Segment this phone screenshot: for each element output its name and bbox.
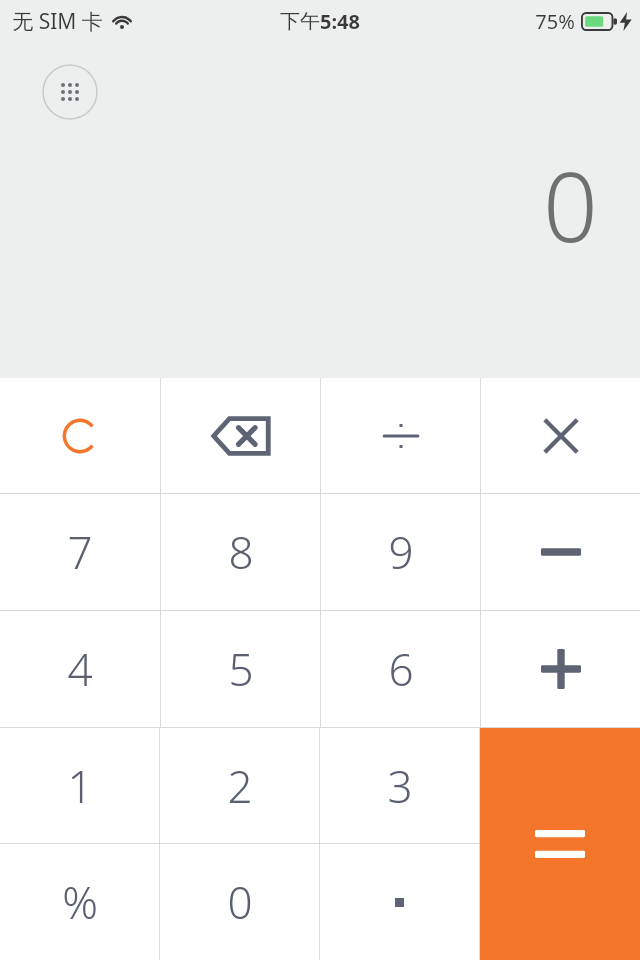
staticText: 6 [388, 639, 414, 699]
staticText: 0 [227, 872, 253, 932]
other: Divide [381, 416, 421, 456]
staticText: 7 [67, 522, 93, 582]
other: Clear [57, 413, 103, 459]
button[interactable]: 6 [321, 611, 480, 727]
staticText: 0 [543, 139, 598, 270]
staticText: % [62, 872, 98, 932]
button[interactable]: % [0, 844, 159, 960]
staticText: 下午 [280, 9, 320, 34]
button[interactable]: Clear [0, 378, 160, 493]
other: Backspace [212, 417, 270, 455]
staticText: 4 [67, 639, 93, 699]
button[interactable]: 1 [0, 728, 159, 843]
button[interactable]: Divide [321, 378, 480, 493]
other: Multiply [542, 417, 580, 455]
staticText: 2 [227, 756, 253, 816]
button[interactable]: 9 [321, 494, 480, 610]
button[interactable]: Plus [481, 611, 640, 727]
staticText: 5:48 [320, 8, 360, 35]
staticText: 8 [228, 522, 254, 582]
staticText: 75% [535, 8, 575, 35]
staticText: 1 [67, 756, 93, 816]
button[interactable]: 2 [160, 728, 319, 843]
other: Minus [541, 546, 581, 558]
button[interactable]: 5 [161, 611, 320, 727]
button[interactable]: 7 [0, 494, 160, 610]
staticText: 5 [228, 639, 254, 699]
button[interactable]: Decimal point [320, 844, 479, 960]
button[interactable]: Multiply [481, 378, 640, 493]
button[interactable]: 0 [160, 844, 319, 960]
staticText: 9 [388, 522, 414, 582]
button[interactable]: Equals [480, 728, 640, 960]
button[interactable]: Backspace [161, 378, 320, 493]
button[interactable]: Minus [481, 494, 640, 610]
other: Plus [541, 649, 581, 689]
button[interactable]: 8 [161, 494, 320, 610]
button[interactable]: 4 [0, 611, 160, 727]
staticText: 3 [387, 756, 413, 816]
staticText: 无 SIM 卡 [12, 7, 103, 36]
button[interactable]: Menu [42, 64, 98, 120]
button[interactable]: 3 [320, 728, 479, 843]
